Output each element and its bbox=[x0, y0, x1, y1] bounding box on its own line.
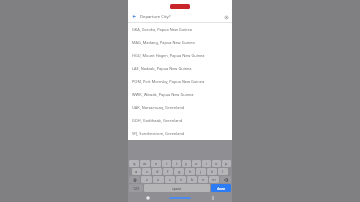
button[interactable]: x bbox=[153, 176, 164, 183]
staticText: GOH, Godthaab, Greenland bbox=[132, 118, 183, 123]
button[interactable]: j bbox=[196, 168, 206, 175]
button[interactable]: WWK, Wewak, Papua New Guinea bbox=[128, 88, 232, 101]
staticText: f bbox=[167, 169, 169, 174]
button[interactable]: LAE, Nadzab, Papua New Guinea bbox=[128, 62, 232, 75]
staticText: b bbox=[191, 177, 194, 182]
staticText: d bbox=[156, 169, 159, 174]
staticText: l bbox=[222, 169, 224, 174]
staticText: r bbox=[166, 161, 168, 166]
button[interactable]: Back bbox=[128, 11, 232, 22]
button[interactable]: Home bbox=[167, 194, 193, 202]
button[interactable]: k bbox=[207, 168, 217, 175]
button[interactable]: UAK, Narsarsuaq, Greenland bbox=[128, 101, 232, 114]
button[interactable]: o bbox=[212, 160, 221, 167]
button[interactable]: w bbox=[140, 160, 150, 167]
button[interactable]: d bbox=[152, 168, 162, 175]
button[interactable]: h bbox=[185, 168, 195, 175]
staticText: GKA, Goroka, Papua New Guinea bbox=[132, 27, 192, 32]
staticText: p bbox=[225, 161, 228, 166]
button[interactable]: l bbox=[218, 168, 228, 175]
button[interactable]: Recents bbox=[209, 194, 217, 202]
button[interactable]: POM, Port Moresby, Papua New Guinea bbox=[128, 75, 232, 88]
staticText: space bbox=[172, 186, 182, 191]
button[interactable]: shift bbox=[129, 176, 140, 183]
button[interactable]: b bbox=[187, 176, 197, 183]
button[interactable]: n bbox=[198, 176, 208, 183]
button[interactable]: z bbox=[141, 176, 152, 183]
staticText: y bbox=[185, 161, 188, 166]
other: Logo bbox=[170, 4, 190, 9]
staticText: t bbox=[176, 161, 178, 166]
button[interactable]: e bbox=[151, 160, 161, 167]
staticText: i bbox=[206, 161, 208, 166]
button[interactable]: r bbox=[162, 160, 171, 167]
staticText: a bbox=[135, 169, 138, 174]
staticText: HGU, Mount Hagen, Papua New Guinea bbox=[132, 53, 205, 58]
button[interactable]: a bbox=[132, 168, 141, 175]
staticText: j bbox=[200, 169, 202, 174]
staticText: o bbox=[215, 161, 218, 166]
button[interactable]: MAG, Madang, Papua New Guinea bbox=[128, 36, 232, 49]
staticText: m bbox=[212, 177, 216, 182]
button[interactable]: c bbox=[165, 176, 175, 183]
staticText: c bbox=[169, 177, 171, 182]
staticText: WWK, Wewak, Papua New Guinea bbox=[132, 92, 194, 97]
staticText: done bbox=[217, 186, 226, 191]
button[interactable]: Back bbox=[144, 194, 152, 202]
button[interactable]: y bbox=[182, 160, 191, 167]
button[interactable]: delete bbox=[220, 176, 231, 183]
staticText: h bbox=[189, 169, 192, 174]
staticText: Departure City? bbox=[140, 14, 223, 20]
staticText: n bbox=[202, 177, 205, 182]
button[interactable]: m bbox=[209, 176, 219, 183]
staticText: 123 bbox=[133, 186, 139, 191]
button[interactable]: s bbox=[142, 168, 151, 175]
staticText: UAK, Narsarsuaq, Greenland bbox=[132, 105, 185, 110]
staticText: x bbox=[157, 177, 160, 182]
staticText: z bbox=[146, 177, 148, 182]
button[interactable]: u bbox=[192, 160, 201, 167]
staticText: MAG, Madang, Papua New Guinea bbox=[132, 40, 195, 45]
button[interactable]: i bbox=[202, 160, 211, 167]
staticText: e bbox=[155, 161, 158, 166]
button[interactable]: done bbox=[211, 184, 231, 192]
staticText: w bbox=[143, 161, 147, 166]
button[interactable]: 123 bbox=[129, 184, 143, 192]
button[interactable]: Clear bbox=[223, 14, 229, 20]
staticText: POM, Port Moresby, Papua New Guinea bbox=[132, 79, 205, 84]
button[interactable]: space bbox=[144, 184, 210, 192]
button[interactable]: GKA, Goroka, Papua New Guinea bbox=[128, 23, 232, 36]
button[interactable]: q bbox=[129, 160, 139, 167]
staticText: SFJ, Sondrestrom, Greenland bbox=[132, 131, 185, 136]
button[interactable]: Back bbox=[131, 13, 138, 20]
staticText: g bbox=[178, 169, 181, 174]
button[interactable]: SFJ, Sondrestrom, Greenland bbox=[128, 127, 232, 140]
button[interactable]: p bbox=[222, 160, 231, 167]
button[interactable]: HGU, Mount Hagen, Papua New Guinea bbox=[128, 49, 232, 62]
button[interactable]: g bbox=[174, 168, 184, 175]
staticText: v bbox=[180, 177, 183, 182]
button[interactable]: t bbox=[172, 160, 181, 167]
staticText: s bbox=[146, 169, 148, 174]
button[interactable]: GOH, Godthaab, Greenland bbox=[128, 114, 232, 127]
button[interactable]: v bbox=[176, 176, 186, 183]
staticText: u bbox=[195, 161, 198, 166]
button[interactable]: f bbox=[163, 168, 173, 175]
staticText: q bbox=[133, 161, 136, 166]
staticText: k bbox=[211, 169, 214, 174]
staticText: LAE, Nadzab, Papua New Guinea bbox=[132, 66, 192, 71]
